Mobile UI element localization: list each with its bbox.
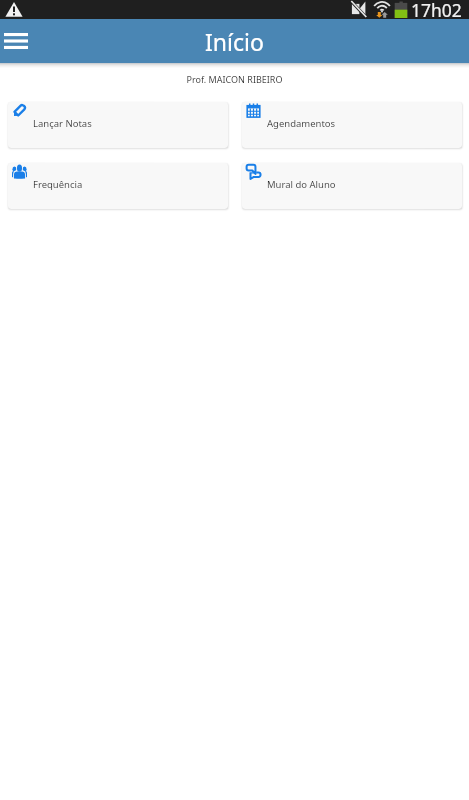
button[interactable]: Mural do Aluno xyxy=(242,163,462,209)
staticText: Prof. MAICON RIBEIRO xyxy=(0,73,469,85)
staticText: Lançar Notas xyxy=(33,117,92,130)
button[interactable]: Menu xyxy=(0,19,31,63)
staticText: Mural do Aluno xyxy=(267,178,336,191)
staticText: Frequência xyxy=(33,178,83,191)
staticText: 17h02 xyxy=(411,0,462,17)
staticText: Agendamentos xyxy=(267,117,336,130)
button[interactable]: Frequência xyxy=(8,163,228,209)
button[interactable]: Lançar Notas xyxy=(8,102,228,148)
button[interactable]: Agendamentos xyxy=(242,102,462,148)
staticText: Início xyxy=(205,26,264,57)
